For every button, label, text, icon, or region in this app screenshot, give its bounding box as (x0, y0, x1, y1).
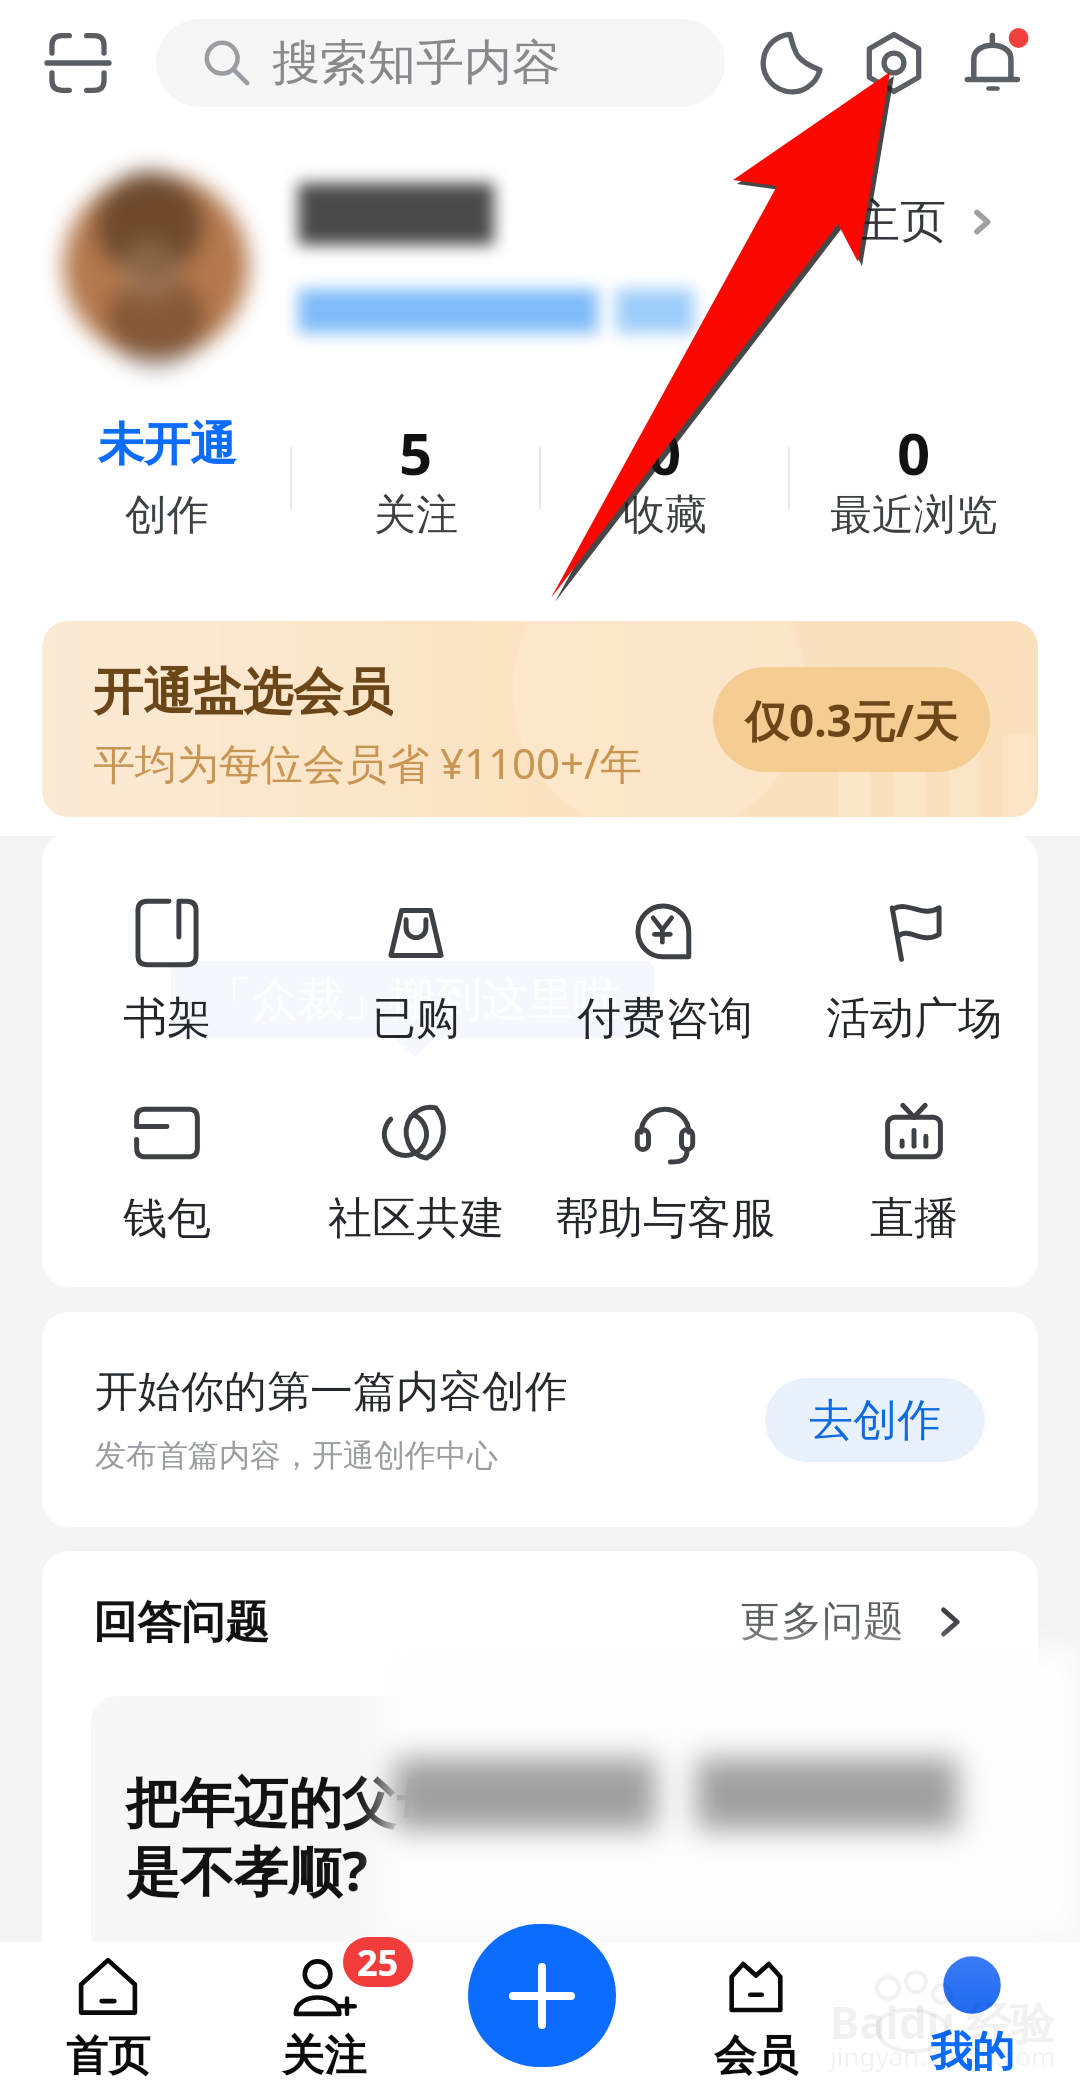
staticText: 平均为每位会员省 ¥1100+/年 (93, 734, 642, 790)
staticText: 帮助与客服 (555, 1191, 775, 1246)
button[interactable]: 付费咨询 (540, 873, 789, 1073)
staticText: 钱包 (123, 1191, 211, 1246)
staticText: Baidu 经验 (830, 1992, 1055, 2052)
staticText: 未开通 (98, 416, 236, 474)
button[interactable]: 书架 (42, 873, 291, 1073)
staticText: 我的 (930, 2026, 1014, 2079)
button[interactable]: Profile photo (46, 156, 266, 376)
button[interactable]: Notifications (946, 13, 1046, 113)
staticText: 直播 (870, 1191, 958, 1246)
button[interactable]: 开始你的第一篇内容创作 (42, 1312, 1038, 1527)
staticText: 已购 (372, 991, 460, 1046)
button[interactable]: 我的 (864, 1942, 1080, 2085)
staticText: 仅0.3元/天 (745, 690, 958, 750)
button[interactable]: 钱包 (42, 1073, 291, 1273)
staticText: 「众裁」搬到这里啦 (206, 971, 620, 1029)
button[interactable]: 主页 (854, 193, 998, 251)
button[interactable]: 更多问题 (740, 1596, 970, 1648)
button[interactable]: 直播 (789, 1073, 1038, 1273)
button[interactable]: 会员 (648, 1942, 864, 2085)
staticText: 搜索知乎内容 (272, 33, 560, 93)
staticText: 关注 (282, 2030, 366, 2083)
staticText: 社区共建 (328, 1191, 504, 1246)
staticText: 开始你的第一篇内容创作 (95, 1365, 568, 1419)
staticText: 关注 (374, 489, 458, 542)
staticText: 首页 (66, 2030, 150, 2083)
button[interactable]: 帮助与客服 (540, 1073, 789, 1273)
staticText: 25 (357, 1938, 399, 1987)
staticText: 创作 (125, 489, 209, 542)
button[interactable]: 0 (541, 390, 788, 565)
staticText: 0 (897, 413, 931, 477)
staticText: 收藏 (623, 489, 707, 542)
button[interactable]: 搜索知乎内容 (156, 19, 725, 107)
staticText: 活动广场 (826, 991, 1002, 1046)
button[interactable]: 未开通 (43, 390, 290, 565)
button[interactable]: 把年迈的父母送到养老院 是不孝顺? (91, 1696, 1038, 2085)
button[interactable]: 25 (216, 1942, 432, 2085)
staticText: jingyan.baidu.com (830, 2038, 1056, 2073)
staticText: 回答问题 (93, 1595, 269, 1650)
staticText: 付费咨询 (577, 991, 753, 1046)
staticText: 主页 (854, 193, 946, 251)
staticText: 书架 (123, 991, 211, 1046)
staticText: 0 (648, 413, 682, 477)
button[interactable]: 5 (292, 390, 539, 565)
button[interactable]: 0 (790, 390, 1037, 565)
button[interactable]: 已购 (291, 873, 540, 1073)
button[interactable]: 首页 (0, 1942, 216, 2085)
button[interactable]: Camera (844, 13, 944, 113)
button[interactable]: 社区共建 (291, 1073, 540, 1273)
staticText: 发布首篇内容，开通创作中心 (95, 1436, 498, 1475)
staticText: 更多问题 (740, 1596, 904, 1648)
staticText: 会员 (714, 2030, 798, 2083)
staticText: 把年迈的父母送到养老院 是不孝顺? (126, 1770, 720, 1907)
button[interactable]: 仅0.3元/天 (713, 667, 990, 772)
button[interactable]: 去创作 (765, 1378, 985, 1462)
button[interactable]: 活动广场 (789, 873, 1038, 1073)
staticText: 5 (399, 413, 433, 477)
button[interactable]: Dark mode (742, 13, 842, 113)
button[interactable]: Create post (468, 1924, 616, 2067)
button[interactable]: 开通盐选会员 (42, 621, 1038, 817)
staticText: 最近浏览 (830, 489, 998, 542)
staticText: 开通盐选会员 (93, 661, 393, 723)
staticText: 去创作 (809, 1393, 941, 1448)
button[interactable]: Scan QR code (38, 23, 118, 103)
